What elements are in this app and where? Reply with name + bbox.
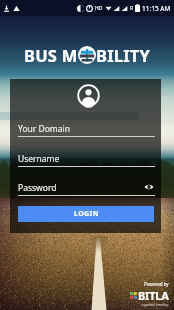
staticText: HD (95, 5, 103, 12)
staticText: Your Domain (18, 123, 71, 135)
staticText: Password (18, 182, 57, 194)
staticText: LOGIN (74, 209, 99, 219)
staticText: BUS M (24, 44, 78, 66)
staticText: 11:15 AM (142, 4, 171, 13)
staticText: Username (18, 153, 60, 165)
button[interactable]: Password (18, 182, 155, 198)
staticText: Powered by (144, 281, 169, 287)
button[interactable]: Your Domain (18, 123, 155, 139)
staticText: R (130, 5, 134, 12)
staticText: BITLA (138, 288, 169, 303)
button[interactable]: LOGIN (18, 206, 154, 222)
staticText: organized traveling (141, 303, 169, 307)
button[interactable]: Username (18, 153, 155, 169)
staticText: BILITY (96, 44, 151, 66)
button[interactable]: Show password (143, 181, 155, 193)
